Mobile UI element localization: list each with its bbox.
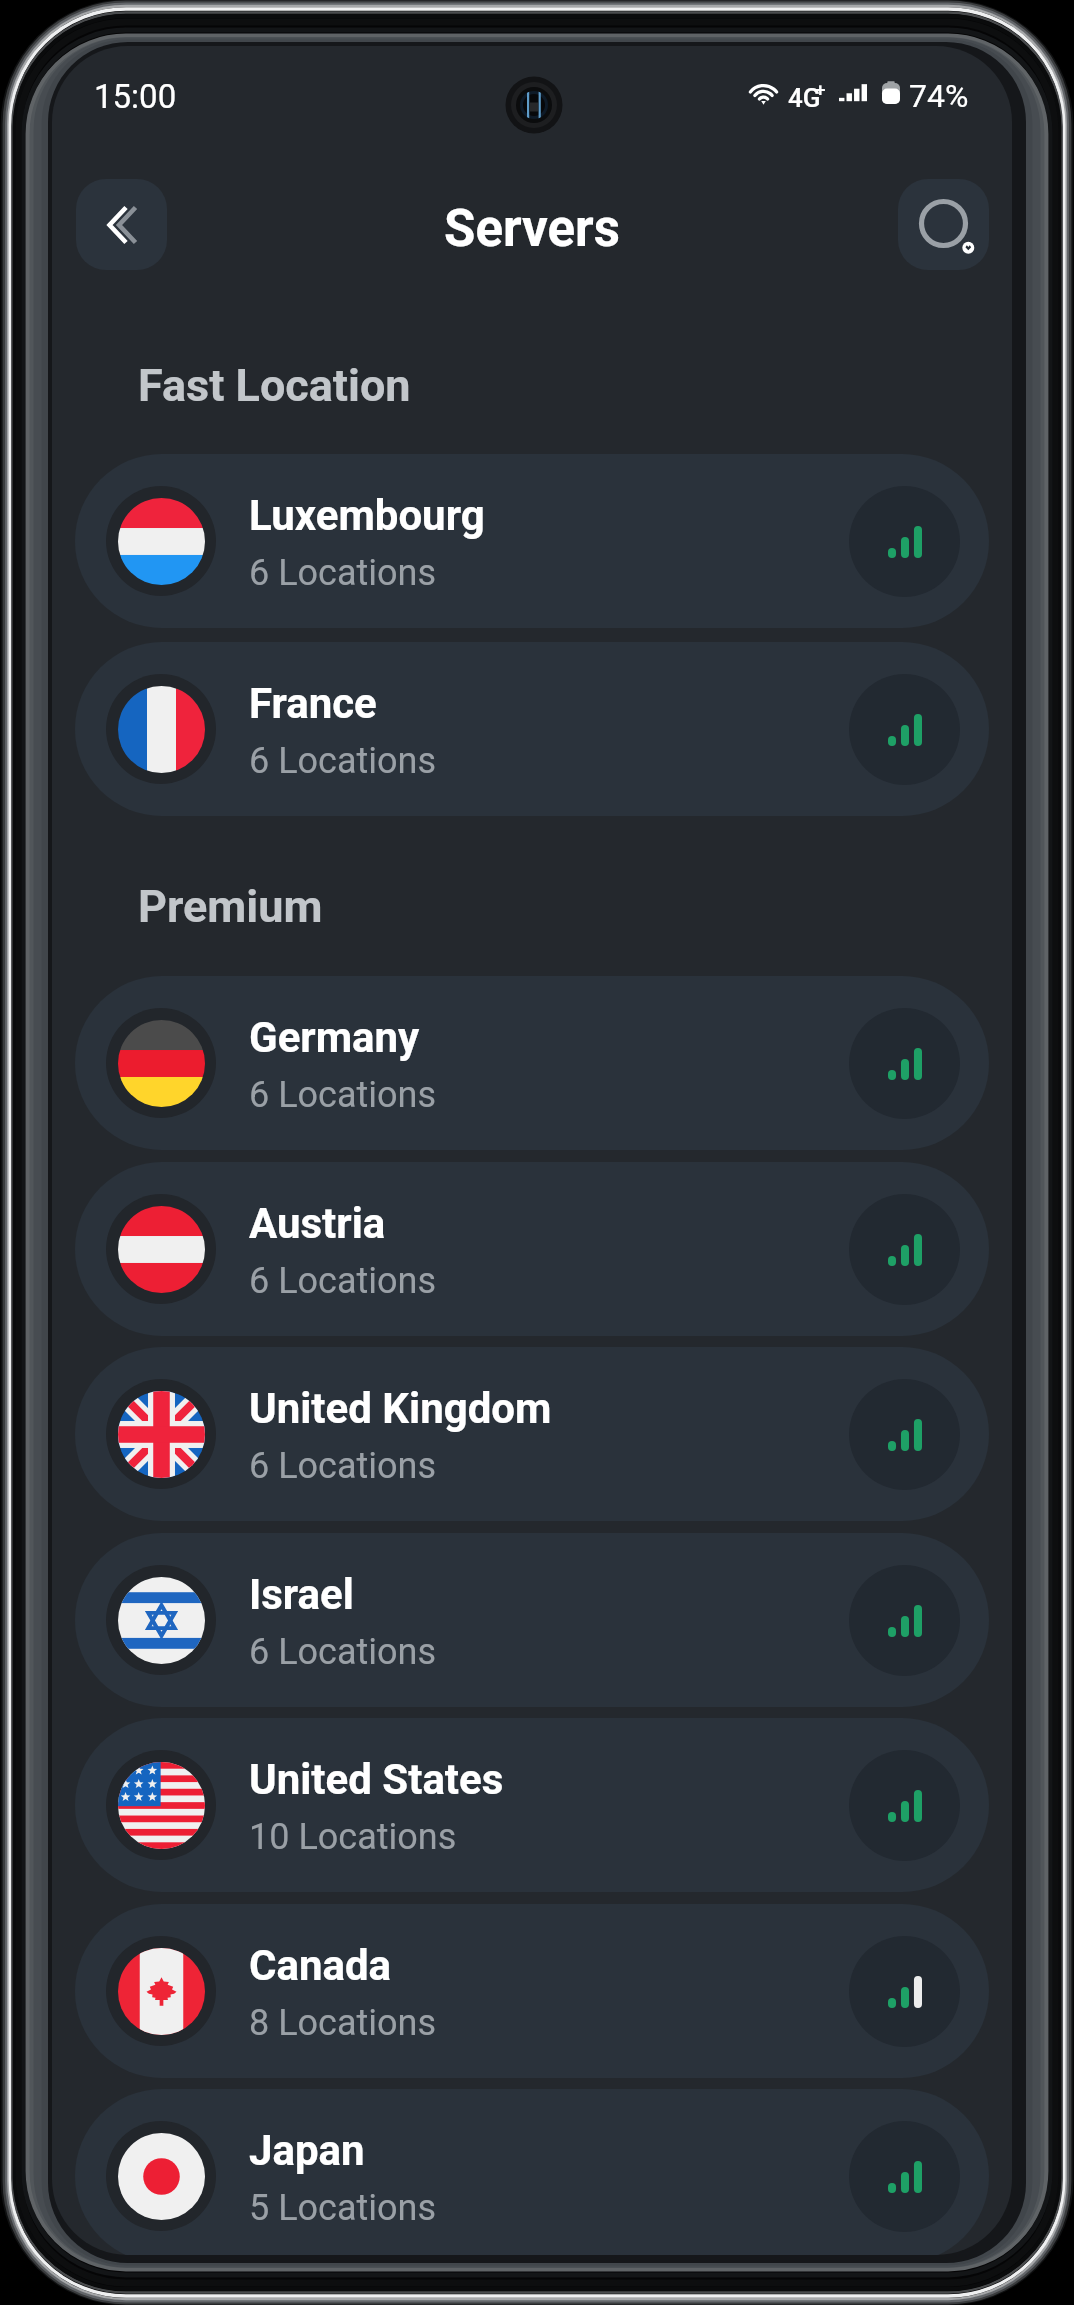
staticText: 6 Locations (249, 1074, 437, 1116)
staticText: 6 Locations (249, 1260, 437, 1302)
staticText: 74% (909, 77, 969, 115)
staticText: France (249, 679, 377, 728)
staticText: Japan (249, 2126, 365, 2175)
button[interactable]: Austria (75, 1162, 989, 1336)
button[interactable]: Israel (75, 1533, 989, 1707)
staticText: Canada (249, 1941, 392, 1990)
staticText: Premium (138, 880, 323, 933)
staticText: Germany (249, 1013, 420, 1062)
button[interactable]: Favorites (898, 179, 989, 270)
staticText: Luxembourg (249, 491, 485, 540)
staticText: 6 Locations (249, 1631, 437, 1673)
staticText: 10 Locations (249, 1816, 457, 1858)
button[interactable]: Germany (75, 976, 989, 1150)
button[interactable]: Back (76, 179, 167, 270)
button[interactable]: Canada (75, 1904, 989, 2078)
staticText: 8 Locations (249, 2002, 437, 2044)
staticText: United Kingdom (249, 1384, 552, 1433)
staticText: United States (249, 1755, 504, 1804)
button[interactable]: United States (75, 1718, 989, 1892)
staticText: Fast Location (138, 359, 411, 412)
staticText: 15:00 (94, 77, 177, 116)
button[interactable]: Luxembourg (75, 454, 989, 628)
staticText: + (815, 78, 826, 100)
staticText: 5 Locations (249, 2187, 437, 2229)
staticText: 4G (788, 83, 821, 113)
staticText: Servers (444, 199, 620, 259)
button[interactable]: Japan (75, 2089, 989, 2255)
staticText: 6 Locations (249, 740, 437, 782)
staticText: 6 Locations (249, 552, 437, 594)
staticText: Austria (249, 1199, 386, 1248)
staticText: Israel (249, 1570, 354, 1619)
button[interactable]: United Kingdom (75, 1347, 989, 1521)
staticText: 6 Locations (249, 1445, 437, 1487)
button[interactable]: France (75, 642, 989, 816)
